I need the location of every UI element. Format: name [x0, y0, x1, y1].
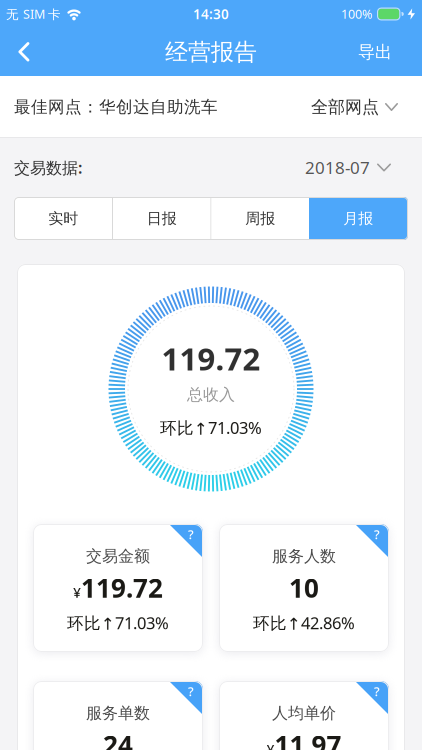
- staticText: 环比↑71.03%: [160, 417, 262, 439]
- button[interactable]: 周报: [211, 197, 309, 240]
- staticText: 服务人数: [272, 546, 336, 566]
- staticText: 环比↑42.86%: [253, 612, 355, 634]
- staticText: 周报: [245, 209, 275, 228]
- staticText: ¥119.72: [73, 570, 163, 605]
- staticText: 全部网点: [311, 96, 379, 118]
- staticText: 交易数据:: [14, 157, 82, 178]
- button[interactable]: [0, 42, 31, 62]
- staticText: 总收入: [187, 385, 235, 405]
- staticText: 10: [289, 570, 319, 605]
- staticText: 日报: [147, 209, 177, 228]
- button[interactable]: 实时: [14, 197, 112, 240]
- staticText: 交易金额: [86, 546, 150, 566]
- staticText: ¥11.97: [266, 727, 341, 750]
- button[interactable]: 月报: [309, 197, 407, 240]
- staticText: 实时: [48, 209, 78, 228]
- button[interactable]: 人均单价: [219, 681, 389, 750]
- staticText: 环比↑71.03%: [67, 612, 169, 634]
- staticText: 最佳网点：华创达自助洗车: [14, 97, 218, 117]
- staticText: ?: [374, 683, 380, 700]
- staticText: 无 SIM 卡: [6, 5, 61, 22]
- staticText: 2018-07: [305, 156, 370, 179]
- button[interactable]: 2018-07: [305, 156, 391, 179]
- staticText: 14:30: [193, 5, 229, 23]
- staticText: ?: [374, 526, 380, 543]
- button[interactable]: 导出: [358, 41, 422, 63]
- staticText: ?: [188, 683, 194, 700]
- staticText: 100%: [341, 5, 372, 22]
- staticText: 月报: [343, 209, 373, 228]
- button[interactable]: 服务单数: [33, 681, 203, 750]
- button[interactable]: 全部网点: [311, 96, 398, 118]
- staticText: 经营报告: [165, 37, 257, 66]
- staticText: 导出: [358, 41, 392, 63]
- button[interactable]: 日报: [113, 197, 210, 240]
- staticText: 人均单价: [272, 703, 336, 723]
- button[interactable]: 交易金额: [33, 524, 203, 652]
- staticText: 119.72: [161, 337, 260, 380]
- staticText: 服务单数: [86, 703, 150, 723]
- staticText: ?: [188, 526, 194, 543]
- button[interactable]: 服务人数: [219, 524, 389, 652]
- staticText: 24: [103, 727, 133, 750]
